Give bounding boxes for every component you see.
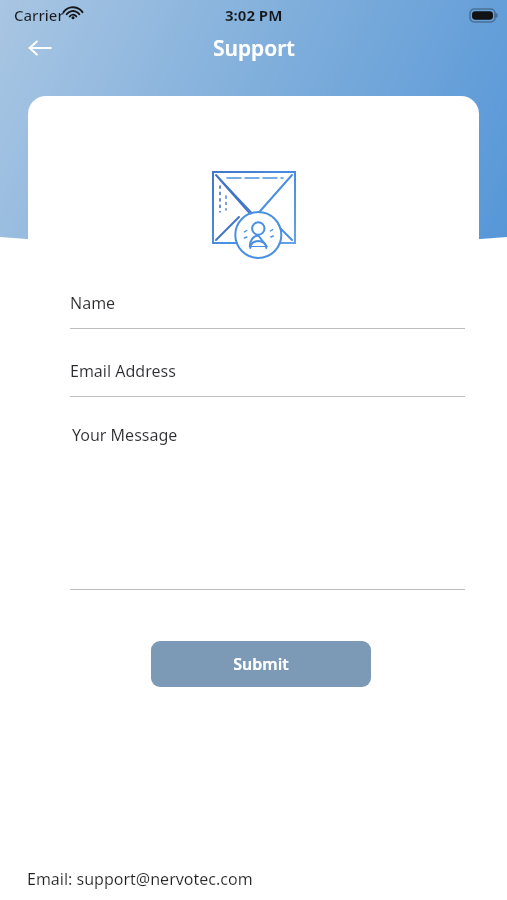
button[interactable]: Email: support@nervotec.com xyxy=(27,868,253,890)
staticText: Name xyxy=(70,292,116,314)
button[interactable]: Back xyxy=(18,26,62,70)
staticText: Your Message xyxy=(72,424,178,446)
staticText: 3:02 PM xyxy=(225,5,283,25)
staticText: Email Address xyxy=(70,360,176,382)
button[interactable]: Email Address xyxy=(70,360,465,382)
button[interactable]: Name xyxy=(70,292,465,314)
button[interactable]: Submit xyxy=(151,641,371,687)
staticText: Carrier xyxy=(14,5,64,25)
button[interactable]: Your Message xyxy=(70,424,465,590)
staticText: Submit xyxy=(233,653,289,675)
staticText: Support xyxy=(213,34,295,63)
